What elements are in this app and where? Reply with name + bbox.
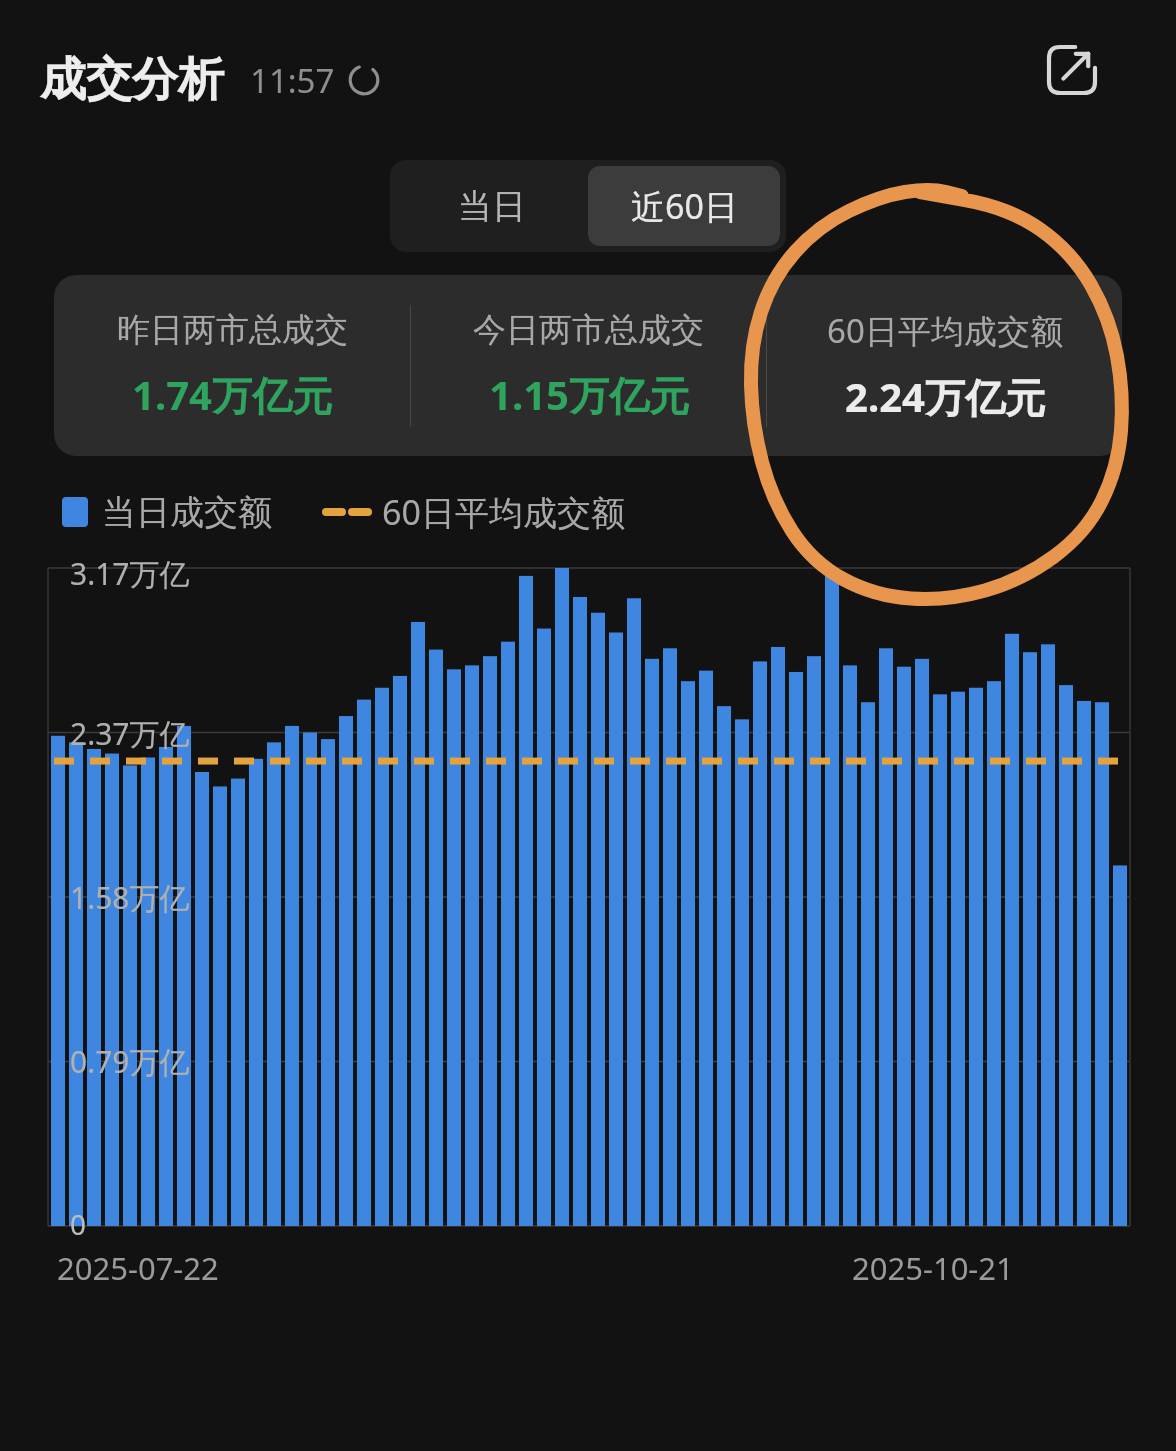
button[interactable]: 今日两市总成交 [411,275,766,456]
staticText: 成交分析 [40,51,224,109]
staticText: 2025-10-21 [852,1247,1014,1289]
staticText: 0 [70,1205,87,1243]
staticText: 1.58万亿 [70,877,190,918]
button[interactable]: 60日平均成交额 [767,275,1122,456]
staticText: 0.79万亿 [70,1041,190,1082]
staticText: 近60日 [631,183,738,229]
staticText: 60日平均成交额 [827,308,1063,353]
staticText: 2.24万亿元 [845,369,1045,424]
staticText: 当日 [458,185,526,228]
staticText: 1.15万亿元 [489,367,689,422]
staticText: 今日两市总成交 [473,309,704,351]
staticText: 60日平均成交额 [382,489,625,535]
button[interactable]: 昨日两市总成交 [54,275,410,456]
button[interactable]: 分享 [1036,34,1108,106]
staticText: 当日成交额 [102,491,272,534]
staticText: 3.17万亿 [70,553,190,594]
staticText: 1.74万亿元 [132,367,332,422]
staticText: 11:57 [250,58,335,103]
staticText: 昨日两市总成交 [117,309,348,351]
button[interactable]: 近60日 [588,166,780,246]
staticText: 2025-07-22 [57,1247,219,1289]
staticText: 2.37万亿 [70,713,190,754]
button[interactable]: 当日 [396,166,588,246]
